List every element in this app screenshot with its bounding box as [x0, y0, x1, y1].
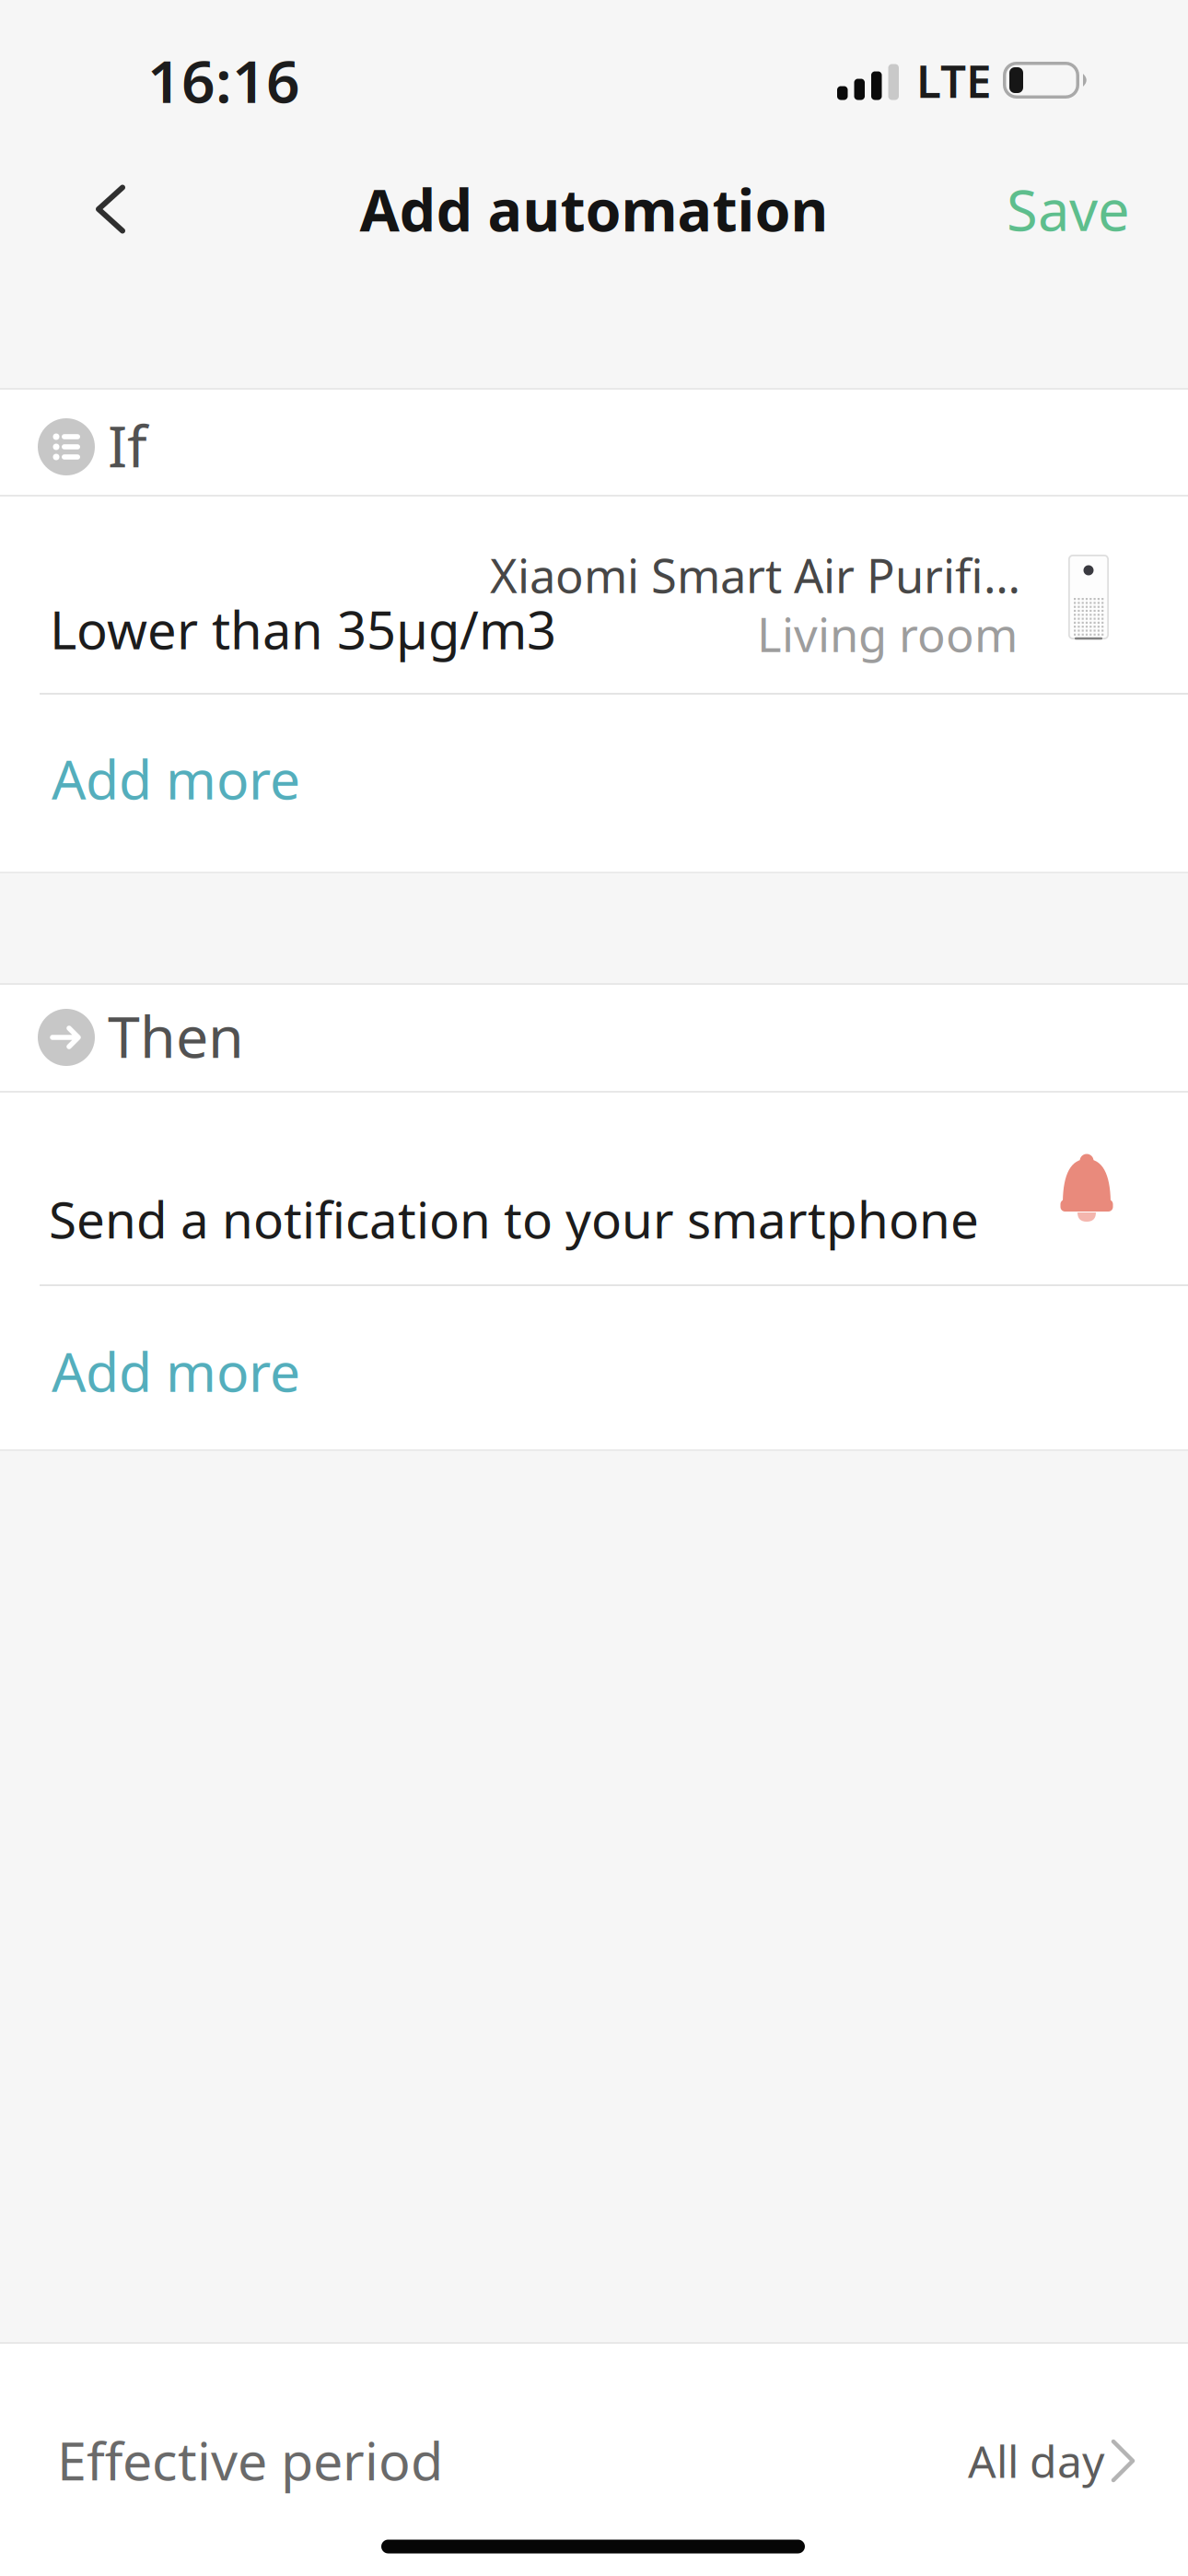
staticText: Living room	[757, 603, 1018, 665]
button[interactable]: Effective period	[0, 2342, 1188, 2576]
staticText: Send a notification to your smartphone	[49, 1185, 979, 1252]
staticText: 16:16	[147, 41, 300, 119]
button[interactable]: Back	[64, 163, 157, 255]
staticText: All day	[968, 2431, 1104, 2490]
staticText: Then	[108, 997, 244, 1074]
button[interactable]: Send a notification to your smartphone	[0, 1093, 1188, 1285]
button[interactable]: Lower than 35µg/m3	[0, 497, 1188, 694]
staticText: Lower than 35µg/m3	[50, 595, 556, 664]
staticText: If	[108, 407, 147, 483]
staticText: Effective period	[57, 2425, 443, 2495]
button[interactable]: Add more	[0, 694, 1188, 873]
button[interactable]: Add more	[0, 1285, 1188, 1451]
staticText: Add more	[52, 1335, 300, 1407]
staticText: Add automation	[360, 171, 828, 247]
staticText: Add more	[52, 743, 300, 814]
staticText: LTE	[916, 50, 992, 110]
staticText: Xiaomi Smart Air Purifi…	[490, 544, 1020, 606]
button[interactable]: Save	[927, 163, 1130, 255]
staticText: Save	[1007, 172, 1130, 247]
